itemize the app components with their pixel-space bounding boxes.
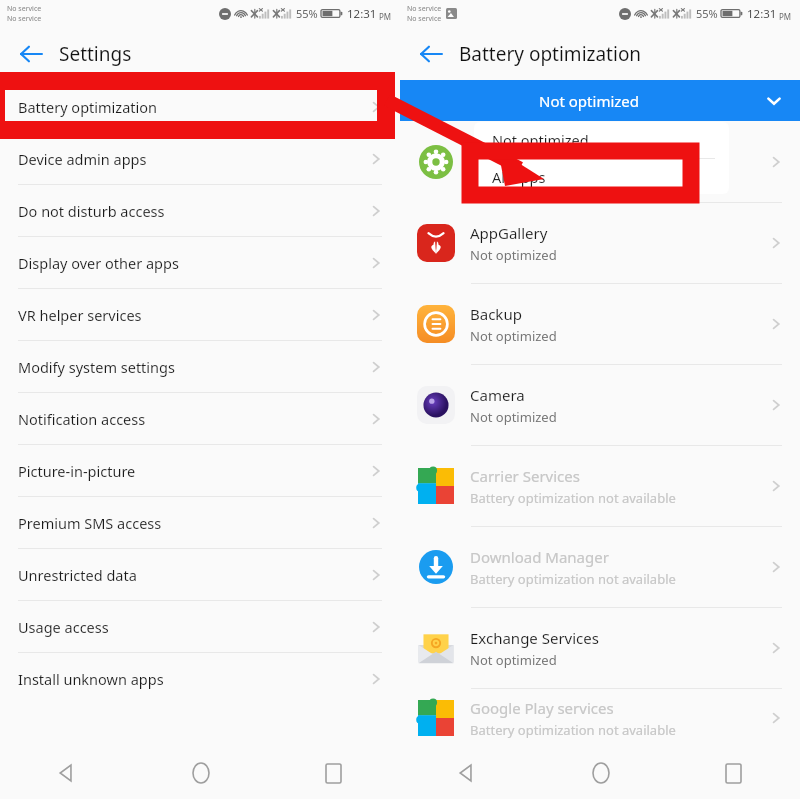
button[interactable]: Back xyxy=(0,747,134,799)
staticText: All apps xyxy=(492,167,546,187)
staticText: Battery optimization xyxy=(18,97,157,117)
staticText: Not optimized xyxy=(470,327,557,345)
other: Open xyxy=(766,233,786,253)
staticText: No service xyxy=(7,4,42,14)
staticText: No service xyxy=(407,4,442,14)
button[interactable]: Display over other apps xyxy=(0,236,400,288)
button[interactable]: Do not disturb access xyxy=(0,184,400,236)
staticText: 55% xyxy=(696,6,718,21)
staticText: Not optimized xyxy=(492,130,589,150)
button[interactable]: Carrier Services xyxy=(400,445,800,526)
staticText: Carrier Services xyxy=(470,466,580,486)
staticText: Backup xyxy=(470,304,522,324)
staticText: VR helper services xyxy=(18,305,142,325)
staticText: Battery optimization not available xyxy=(470,721,676,739)
button[interactable]: Download Manager xyxy=(400,526,800,607)
staticText: Picture-in-picture xyxy=(18,461,136,481)
staticText: Usage access xyxy=(18,617,109,637)
staticText: PM xyxy=(779,11,792,22)
button[interactable]: Exchange Services xyxy=(400,607,800,688)
staticText: Device admin apps xyxy=(18,149,147,169)
other: Open xyxy=(366,201,386,221)
staticText: Battery optimization xyxy=(459,41,642,67)
button[interactable]: Google Play services xyxy=(400,688,800,747)
staticText: Download Manager xyxy=(470,547,609,567)
staticText: 12:31 xyxy=(747,6,777,22)
staticText: Battery optimization not available xyxy=(470,570,676,588)
button[interactable]: AppGallery xyxy=(400,202,800,283)
button[interactable]: VR helper services xyxy=(0,288,400,340)
button[interactable]: Recents xyxy=(667,747,800,799)
staticText: Do not disturb access xyxy=(18,201,165,221)
button[interactable]: Not optimized xyxy=(400,80,800,121)
button[interactable]: Back xyxy=(400,747,534,799)
other: Open xyxy=(766,638,786,658)
other: Open xyxy=(766,152,786,172)
button[interactable]: Usage access xyxy=(0,600,400,652)
staticText: Unrestricted data xyxy=(18,565,137,585)
button[interactable]: Back xyxy=(14,37,48,71)
other: Open xyxy=(366,305,386,325)
button[interactable]: Picture-in-picture xyxy=(0,444,400,496)
button[interactable]: Open xyxy=(400,121,800,202)
staticText: Camera xyxy=(470,385,525,405)
other: Open xyxy=(366,253,386,273)
button[interactable]: Recents xyxy=(267,747,400,799)
staticText: Modify system settings xyxy=(18,357,175,377)
staticText: Exchange Services xyxy=(470,628,599,648)
staticText: No service xyxy=(7,14,42,24)
staticText: Not optimized xyxy=(539,91,640,111)
staticText: Not optimized xyxy=(470,408,557,426)
staticText: 12:31 xyxy=(347,6,377,22)
other: Open xyxy=(366,617,386,637)
other: Open xyxy=(766,708,786,728)
button[interactable]: Notification access xyxy=(0,392,400,444)
other: Open xyxy=(766,476,786,496)
button[interactable]: Backup xyxy=(400,283,800,364)
button[interactable]: Back xyxy=(414,37,448,71)
other: Open xyxy=(366,669,386,689)
staticText: Not optimized xyxy=(470,651,557,669)
other: Open xyxy=(766,395,786,415)
staticText: Display over other apps xyxy=(18,253,179,273)
other: Open xyxy=(366,149,386,169)
button[interactable]: Camera xyxy=(400,364,800,445)
staticText: AppGallery xyxy=(470,223,548,243)
staticText: PM xyxy=(379,11,392,22)
staticText: Premium SMS access xyxy=(18,513,162,533)
other: Open xyxy=(766,314,786,334)
button[interactable]: Home xyxy=(134,747,267,799)
other: Open xyxy=(366,513,386,533)
button[interactable]: Premium SMS access xyxy=(0,496,400,548)
other: Open xyxy=(766,557,786,577)
staticText: Not optimized xyxy=(470,246,557,264)
button[interactable]: Modify system settings xyxy=(0,340,400,392)
button[interactable]: All apps xyxy=(474,159,729,194)
button[interactable]: Install unknown apps xyxy=(0,652,400,704)
staticText: No service xyxy=(407,14,442,24)
staticText: Notification access xyxy=(18,409,146,429)
button[interactable]: Not optimized xyxy=(474,122,729,158)
staticText: Google Play services xyxy=(470,698,614,718)
other: Open xyxy=(366,565,386,585)
button[interactable]: Home xyxy=(534,747,667,799)
other: Open xyxy=(366,97,386,117)
button[interactable]: Device admin apps xyxy=(0,132,400,184)
staticText: Install unknown apps xyxy=(18,669,164,689)
staticText: 55% xyxy=(296,6,318,21)
other: Open xyxy=(366,461,386,481)
staticText: Battery optimization not available xyxy=(470,489,676,507)
other: Open xyxy=(366,357,386,377)
button[interactable]: Battery optimization xyxy=(0,80,400,132)
button[interactable]: Unrestricted data xyxy=(0,548,400,600)
staticText: Settings xyxy=(59,41,132,67)
other: Open xyxy=(366,409,386,429)
